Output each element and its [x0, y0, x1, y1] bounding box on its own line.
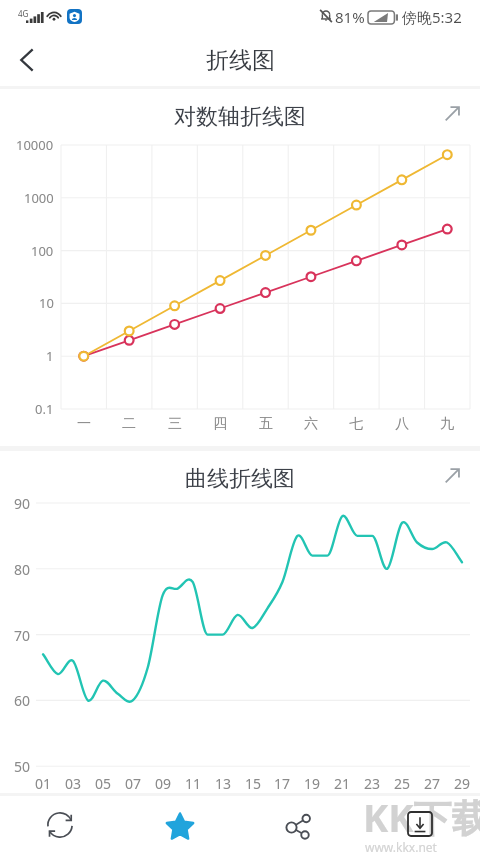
staticText: 25 — [394, 774, 411, 793]
staticText: 曲线折线图 — [0, 465, 480, 493]
staticText: 07 — [125, 774, 142, 793]
staticText: 05 — [95, 774, 112, 793]
button[interactable]: Favorite — [152, 798, 208, 853]
staticText: 17 — [274, 774, 291, 793]
button[interactable]: Expand chart — [437, 98, 467, 128]
staticText: 50 — [14, 757, 31, 776]
staticText: 100 — [31, 242, 54, 260]
staticText: 11 — [185, 774, 202, 793]
staticText: 81% — [335, 7, 365, 27]
staticText: 八 — [395, 415, 409, 433]
staticText: 60 — [14, 691, 31, 710]
staticText: 70 — [14, 626, 31, 645]
staticText: 80 — [14, 560, 31, 579]
staticText: 九 — [440, 415, 454, 433]
button[interactable]: Expand chart — [437, 460, 467, 490]
staticText: 10000 — [16, 136, 54, 154]
staticText: 七 — [349, 415, 363, 433]
staticText: 23 — [364, 774, 381, 793]
staticText: 1000 — [24, 189, 54, 207]
staticText: 03 — [65, 774, 82, 793]
button[interactable]: Share — [271, 798, 327, 853]
staticText: 1 — [46, 347, 54, 365]
staticText: 六 — [304, 415, 318, 433]
staticText: 13 — [215, 774, 232, 793]
staticText: 21 — [334, 774, 351, 793]
staticText: 三 — [168, 415, 182, 433]
staticText: 29 — [454, 774, 471, 793]
button[interactable]: Back — [5, 37, 50, 82]
staticText: 0.1 — [35, 400, 54, 418]
staticText: 15 — [245, 774, 262, 793]
staticText: 90 — [14, 494, 31, 513]
staticText: 09 — [155, 774, 172, 793]
staticText: 10 — [39, 294, 54, 312]
staticText: 对数轴折线图 — [0, 103, 480, 131]
staticText: 01 — [35, 774, 52, 793]
staticText: 傍晚5:32 — [402, 7, 462, 27]
button[interactable]: Download — [407, 811, 433, 837]
staticText: 折线图 — [206, 46, 275, 75]
staticText: www.kkx.net — [365, 839, 437, 853]
staticText: 27 — [424, 774, 441, 793]
staticText: 一 — [77, 415, 91, 433]
staticText: 19 — [304, 774, 321, 793]
staticText: 二 — [122, 415, 136, 433]
staticText: 五 — [259, 415, 273, 433]
staticText: KK下载 — [363, 791, 480, 843]
staticText: 4G — [18, 8, 29, 19]
staticText: 四 — [213, 415, 227, 433]
button[interactable]: Refresh — [32, 797, 88, 853]
